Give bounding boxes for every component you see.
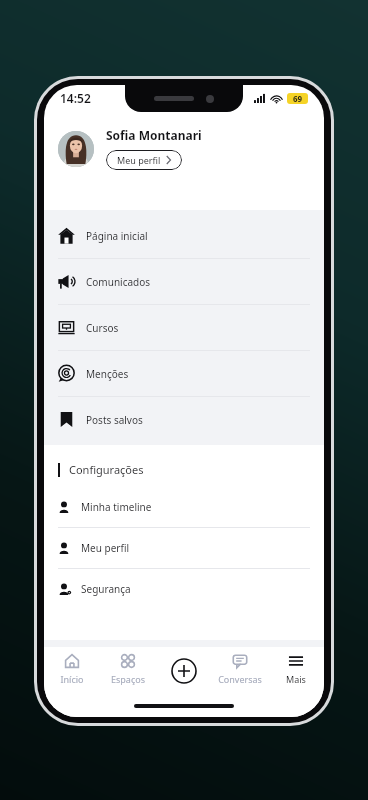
staticText: 69: [293, 93, 303, 104]
staticText: 14:52: [60, 90, 91, 106]
staticText: Minha timeline: [81, 500, 152, 514]
button[interactable]: Espaços: [100, 647, 156, 695]
button[interactable]: Mais: [268, 647, 324, 695]
staticText: Meu perfil: [81, 541, 130, 555]
button[interactable]: Meu perfil: [106, 150, 182, 170]
button[interactable]: Meu perfil: [44, 528, 324, 569]
button[interactable]: Segurança: [44, 569, 324, 609]
button[interactable]: Página inicial: [44, 213, 324, 259]
staticText: Menções: [86, 367, 129, 381]
staticText: Espaços: [111, 673, 145, 685]
staticText: Início: [60, 673, 84, 685]
button[interactable]: Minha timeline: [44, 487, 324, 528]
staticText: Cursos: [86, 321, 119, 335]
staticText: Posts salvos: [86, 413, 143, 427]
button[interactable]: Cursos: [44, 305, 324, 351]
button[interactable]: Posts salvos: [44, 397, 324, 442]
button[interactable]: Criar: [156, 647, 212, 695]
staticText: Página inicial: [86, 229, 148, 243]
staticText: Meu perfil: [117, 154, 161, 166]
button[interactable]: Início: [44, 647, 100, 695]
staticText: Mais: [286, 673, 306, 685]
staticText: Sofia Montanari: [106, 127, 202, 143]
button[interactable]: Menções: [44, 351, 324, 397]
button[interactable]: Conversas: [212, 647, 268, 695]
button[interactable]: Comunicados: [44, 259, 324, 305]
staticText: Configurações: [69, 462, 144, 477]
staticText: Segurança: [81, 582, 131, 596]
staticText: Conversas: [218, 673, 262, 685]
staticText: Comunicados: [86, 275, 151, 289]
